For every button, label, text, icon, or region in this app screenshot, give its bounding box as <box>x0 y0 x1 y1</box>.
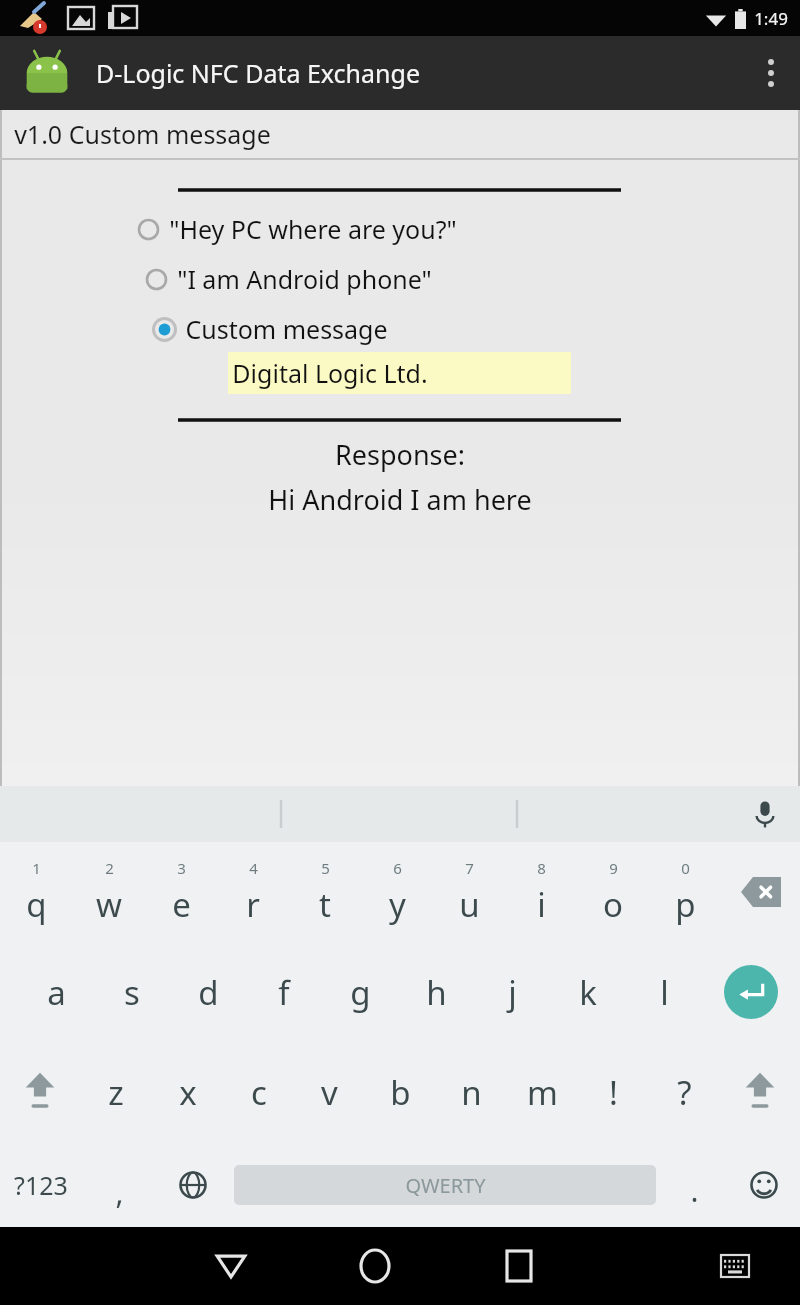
staticText: t <box>319 882 331 927</box>
staticText: Digital Logic Ltd. <box>232 356 428 390</box>
staticText: x <box>179 1070 197 1115</box>
button[interactable]: Voice input <box>730 786 800 842</box>
staticText: 0 <box>681 858 690 878</box>
button[interactable]: 9 <box>577 842 649 942</box>
button[interactable]: x <box>152 1042 223 1142</box>
button[interactable]: h <box>398 942 474 1042</box>
staticText: u <box>459 882 480 927</box>
staticText: 2 <box>105 858 114 878</box>
staticText: 3 <box>177 858 186 878</box>
staticText: d <box>198 970 219 1015</box>
button[interactable]: 1 <box>0 842 73 942</box>
staticText: ! <box>609 1070 618 1115</box>
button[interactable]: 4 <box>217 842 289 942</box>
staticText: s <box>124 970 140 1015</box>
button[interactable]: , <box>82 1142 156 1227</box>
staticText: "I am Android phone" <box>177 262 432 296</box>
button[interactable]: d <box>170 942 246 1042</box>
button[interactable]: Home <box>303 1227 447 1305</box>
button[interactable]: Backspace <box>721 842 800 942</box>
staticText: 7 <box>465 858 474 878</box>
button[interactable]: a <box>18 942 94 1042</box>
staticText: h <box>426 970 447 1015</box>
button[interactable]: j <box>474 942 550 1042</box>
staticText: r <box>246 882 260 927</box>
staticText: 5 <box>321 858 330 878</box>
button[interactable]: z <box>80 1042 152 1142</box>
staticText: D-Logic NFC Data Exchange <box>96 56 420 90</box>
staticText: . <box>690 1170 699 1211</box>
staticText: b <box>390 1070 411 1115</box>
button[interactable]: Digital Logic Ltd. <box>228 352 571 394</box>
staticText: y <box>389 882 406 927</box>
staticText: k <box>579 970 597 1015</box>
staticText: 1:49 <box>754 7 788 30</box>
staticText: f <box>278 970 290 1015</box>
button[interactable]: m <box>507 1042 578 1142</box>
staticText: Hi Android I am here <box>268 481 532 518</box>
button[interactable]: Emoji <box>728 1142 800 1227</box>
button[interactable]: "Hey PC where are you?" <box>137 212 457 246</box>
button[interactable]: Custom message <box>153 312 388 346</box>
button[interactable]: l <box>626 942 702 1042</box>
staticText: v <box>321 1070 338 1115</box>
staticText: q <box>26 882 47 927</box>
button[interactable]: 6 <box>361 842 433 942</box>
button[interactable]: Hide keyboard <box>670 1227 800 1305</box>
staticText: 1 <box>32 858 41 878</box>
button[interactable]: n <box>436 1042 507 1142</box>
button[interactable]: c <box>223 1042 294 1142</box>
staticText: v1.0 Custom message <box>14 117 271 151</box>
button[interactable]: . <box>660 1142 728 1227</box>
button[interactable]: "I am Android phone" <box>145 262 432 296</box>
button[interactable]: b <box>365 1042 436 1142</box>
button[interactable]: s <box>94 942 170 1042</box>
staticText: 6 <box>393 858 402 878</box>
staticText: 4 <box>249 858 258 878</box>
button[interactable]: Back <box>159 1227 303 1305</box>
button[interactable]: QWERTY <box>234 1142 656 1227</box>
staticText: a <box>47 970 66 1015</box>
button[interactable]: g <box>322 942 398 1042</box>
button[interactable]: Shift <box>0 1042 80 1142</box>
button[interactable]: ? <box>649 1042 720 1142</box>
staticText: l <box>660 970 669 1015</box>
button[interactable]: f <box>246 942 322 1042</box>
button[interactable]: 0 <box>649 842 721 942</box>
staticText: z <box>108 1070 124 1115</box>
button[interactable]: ?123 <box>0 1142 82 1227</box>
staticText: c <box>251 1070 267 1115</box>
staticText: 9 <box>609 858 618 878</box>
button[interactable]: ! <box>578 1042 649 1142</box>
staticText: m <box>527 1070 558 1115</box>
staticText: , <box>115 1172 124 1213</box>
staticText: ? <box>677 1070 692 1115</box>
staticText: QWERTY <box>405 1172 486 1199</box>
staticText: w <box>96 882 122 927</box>
staticText: Response: <box>335 436 465 473</box>
staticText: ?123 <box>14 1168 68 1202</box>
button[interactable]: Enter <box>702 942 800 1042</box>
button[interactable]: 3 <box>145 842 217 942</box>
staticText: n <box>461 1070 482 1115</box>
staticText: i <box>537 882 546 927</box>
staticText: o <box>603 882 623 927</box>
button[interactable]: 8 <box>505 842 577 942</box>
staticText: Custom message <box>185 312 388 346</box>
button[interactable]: More options <box>742 36 800 110</box>
staticText: "Hey PC where are you?" <box>169 212 457 246</box>
button[interactable]: Recent apps <box>447 1227 591 1305</box>
button[interactable]: v <box>294 1042 365 1142</box>
staticText: 8 <box>537 858 546 878</box>
button[interactable]: Change language <box>156 1142 230 1227</box>
button[interactable]: 5 <box>289 842 361 942</box>
button[interactable]: 7 <box>433 842 505 942</box>
staticText: e <box>172 882 191 927</box>
staticText: j <box>508 970 517 1015</box>
button[interactable]: 2 <box>73 842 145 942</box>
staticText: g <box>350 970 371 1015</box>
staticText: p <box>675 882 696 927</box>
button[interactable]: Shift <box>720 1042 800 1142</box>
button[interactable]: k <box>550 942 626 1042</box>
